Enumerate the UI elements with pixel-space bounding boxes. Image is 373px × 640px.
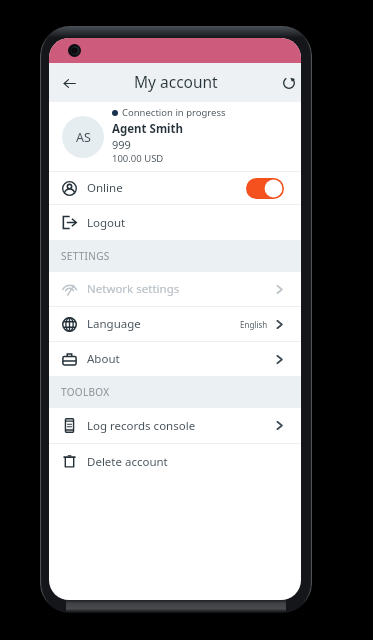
staticText: Delete account — [87, 454, 168, 470]
staticText: My account — [134, 71, 218, 92]
staticText: Connection in progress — [122, 106, 226, 119]
button[interactable]: Refresh — [275, 69, 301, 97]
staticText: Network settings — [87, 281, 180, 297]
staticText: TOOLBOX — [61, 385, 110, 399]
staticText: Agent Smith — [112, 121, 184, 137]
staticText: Log records console — [87, 418, 196, 434]
staticText: SETTINGS — [61, 249, 110, 263]
staticText: English — [240, 319, 268, 330]
staticText: 100.00 USD — [112, 152, 164, 165]
button[interactable]: Log records console — [49, 408, 301, 443]
button[interactable]: Network settings — [49, 272, 301, 306]
staticText: Language — [87, 316, 141, 332]
staticText: About — [87, 351, 120, 367]
button[interactable]: Online — [49, 172, 301, 204]
button[interactable]: Delete account — [49, 444, 301, 479]
staticText: 999 — [112, 137, 131, 152]
button[interactable]: About — [49, 342, 301, 376]
staticText: Online — [87, 180, 123, 196]
staticText: Logout — [87, 215, 126, 231]
button[interactable]: Back — [55, 69, 83, 97]
staticText: AS — [76, 129, 91, 146]
button[interactable]: Logout — [49, 205, 301, 240]
button[interactable]: Language — [49, 307, 301, 341]
button[interactable]: AS — [49, 102, 301, 171]
